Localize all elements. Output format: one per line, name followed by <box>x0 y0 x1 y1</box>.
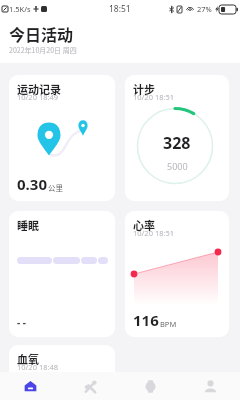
button[interactable]: 心率 <box>125 211 229 337</box>
staticText: 18:51 <box>109 3 131 15</box>
staticText: 计步 <box>133 81 155 97</box>
button[interactable]: Tools <box>60 372 120 400</box>
staticText: 血氧 <box>17 351 39 367</box>
staticText: 公里 <box>48 182 63 193</box>
staticText: 心率 <box>133 217 155 233</box>
staticText: 5000 <box>167 160 188 172</box>
button[interactable]: Profile <box>180 372 240 400</box>
staticText: 运动记录 <box>17 81 61 97</box>
staticText: 27% <box>197 4 212 14</box>
staticText: - - <box>17 315 26 329</box>
staticText: 328 <box>163 132 191 154</box>
staticText: 10/20 18:48 <box>17 362 59 372</box>
staticText: 0.30 <box>17 174 47 194</box>
staticText: 10/20 18:49 <box>17 92 59 102</box>
staticText: 睡眠 <box>17 217 39 233</box>
staticText: 2022年10月20日 周四 <box>9 45 77 55</box>
staticText: 1.5K/s <box>9 4 31 14</box>
button[interactable]: 计步 <box>125 75 229 201</box>
button[interactable]: Devices <box>120 372 180 400</box>
button[interactable]: Home <box>0 372 60 400</box>
staticText: 今日活动 <box>9 22 74 45</box>
button[interactable]: 运动记录 <box>9 75 115 201</box>
button[interactable]: 血氧 <box>9 345 115 400</box>
button[interactable]: 睡眠 <box>9 211 115 337</box>
staticText: 10/20 18:51 <box>133 92 175 102</box>
staticText: BPM <box>160 319 177 329</box>
staticText: 10/20 18:51 <box>133 228 175 238</box>
staticText: 116 <box>133 310 159 330</box>
